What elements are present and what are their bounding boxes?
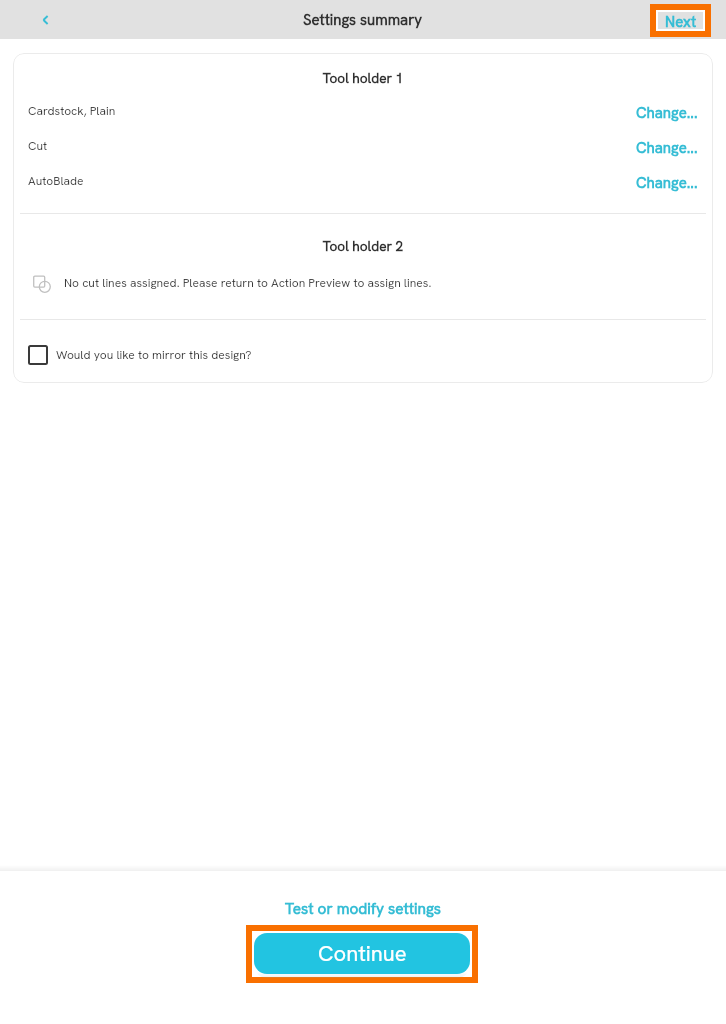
button[interactable]: Change... (636, 173, 698, 193)
staticText: AutoBlade (28, 173, 84, 189)
button[interactable]: Continue (254, 933, 470, 974)
button[interactable]: Change... (636, 103, 698, 123)
staticText: Settings summary (303, 10, 423, 30)
staticText: Cardstock, Plain (28, 103, 116, 119)
staticText: Next (665, 12, 697, 29)
staticText: Change... (636, 173, 698, 193)
button[interactable]: Change... (636, 138, 698, 158)
button[interactable]: Would you like to mirror this design? (28, 345, 252, 365)
staticText: Tool holder 2 (13, 237, 713, 255)
button[interactable]: Test or modify settings (0, 899, 726, 919)
button[interactable]: Back (30, 4, 62, 36)
staticText: Would you like to mirror this design? (56, 347, 252, 363)
staticText: Change... (636, 103, 698, 123)
staticText: Cut (28, 138, 48, 154)
staticText: No cut lines assigned. Please return to … (64, 275, 432, 291)
button[interactable]: Next (658, 12, 703, 29)
staticText: Continue (318, 939, 407, 968)
staticText: Tool holder 1 (13, 69, 713, 87)
staticText: Change... (636, 138, 698, 158)
